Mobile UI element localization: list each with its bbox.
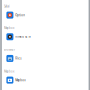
staticText: Vimeo & TV [15,35,31,38]
button[interactable]: Option [0,12,90,18]
button[interactable]: Files [0,55,90,62]
staticText: Option [15,13,25,17]
staticText: Mapbox [4,70,14,73]
staticText: Mapbox [15,78,25,82]
button[interactable]: Mapbox [0,77,90,83]
staticText: Files [15,57,21,60]
button[interactable]: Vimeo & TV [0,33,90,40]
staticText: Browser [4,48,15,51]
staticText: Safari [4,5,10,8]
staticText: Mapbox [4,26,14,30]
